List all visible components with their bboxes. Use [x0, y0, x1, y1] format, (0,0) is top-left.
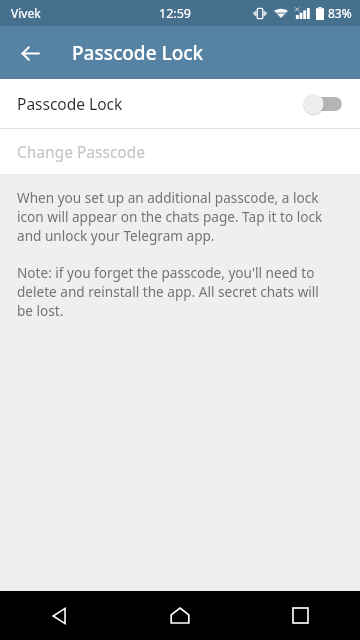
button[interactable]: Passcode Lock toggle	[294, 90, 346, 118]
staticText: When you set up an additional passcode, …	[17, 188, 338, 245]
button[interactable]: Change Passcode	[0, 129, 360, 174]
button[interactable]: Recent apps	[240, 591, 360, 640]
button[interactable]: Passcode Lock	[0, 79, 360, 128]
staticText: Note: if you forget the passcode, you'll…	[17, 263, 338, 320]
staticText: Passcode Lock	[17, 93, 123, 114]
staticText: 12:59	[159, 5, 191, 22]
staticText: Passcode Lock	[72, 40, 204, 66]
button[interactable]: Back	[10, 33, 50, 73]
staticText: 83%	[328, 5, 352, 21]
staticText: Vivek	[11, 5, 41, 21]
button[interactable]: Back	[0, 591, 120, 640]
button[interactable]: Home	[120, 591, 240, 640]
staticText: Change Passcode	[17, 141, 145, 162]
